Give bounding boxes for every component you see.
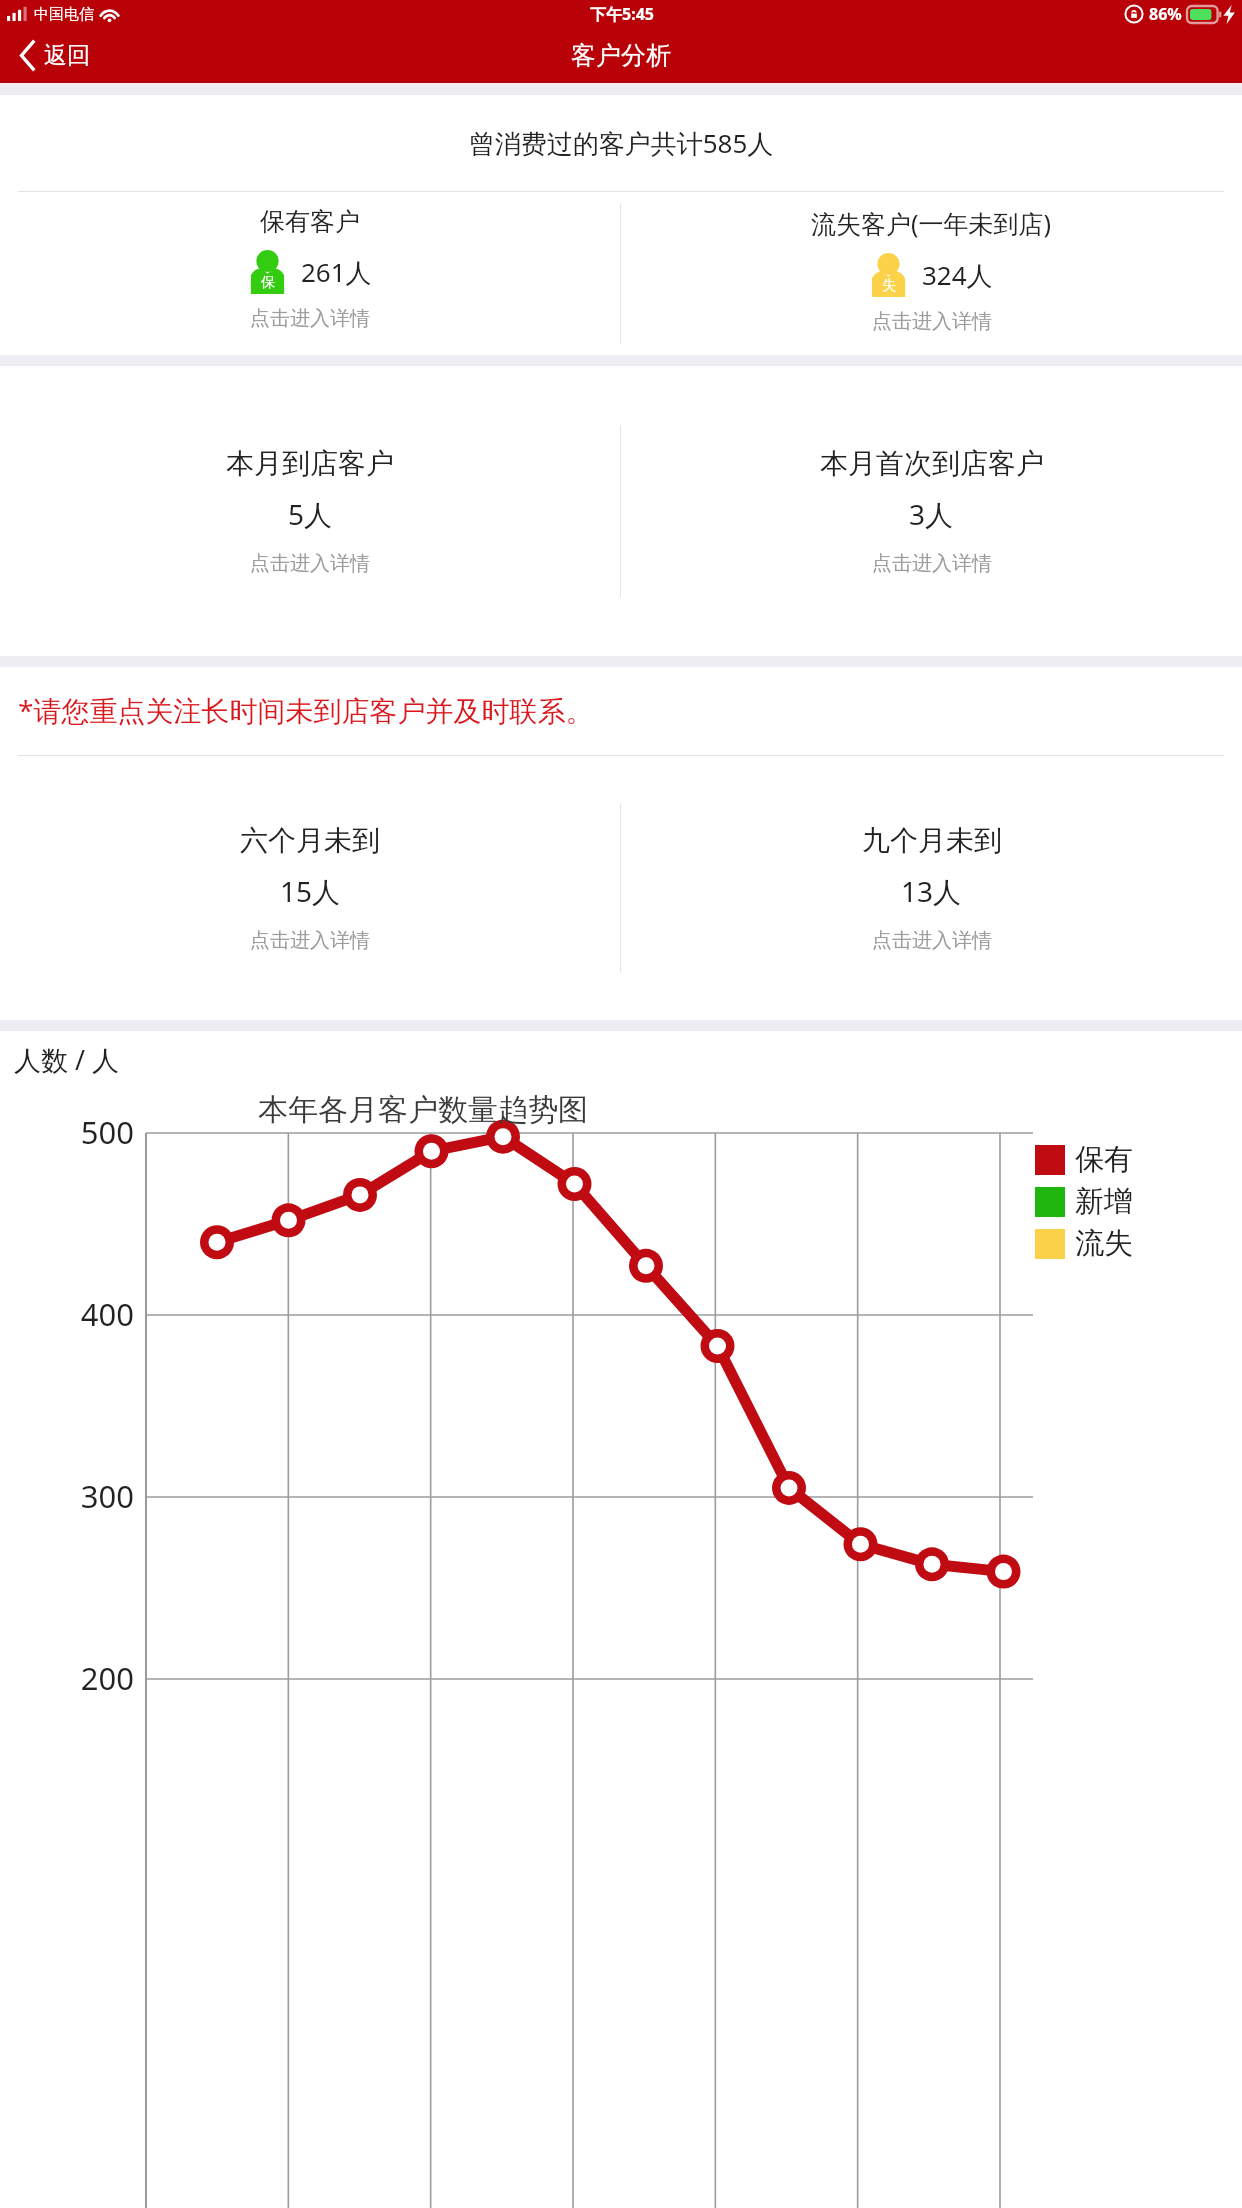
staticText: 保 [261,274,275,292]
staticText: 500 [10,1111,134,1153]
staticText: 点击进入详情 [872,551,992,576]
staticText: 曾消费过的客户共计585人 [0,125,1242,161]
other: Signal [7,7,29,21]
staticText: 点击进入详情 [250,306,370,331]
staticText: 失 [882,277,896,295]
staticText: 5人 [288,495,333,533]
staticText: 人数 / 人 [14,1041,120,1078]
staticText: 流失 [1075,1225,1133,1262]
staticText: 下午5:45 [590,3,654,25]
staticText: 本月首次到店客户 [820,446,1044,481]
staticText: 86% [1149,3,1182,25]
button[interactable]: 保有客户 [0,192,620,355]
button[interactable]: 九个月未到 [621,756,1242,1020]
staticText: 中国电信 [34,5,94,24]
staticText: 点击进入详情 [250,928,370,953]
staticText: *请您重点关注长时间未到店客户并及时联系。 [18,691,594,729]
staticText: 本月到店客户 [226,446,394,481]
staticText: 本年各月客户数量趋势图 [258,1091,588,1129]
staticText: 点击进入详情 [250,551,370,576]
staticText: 324人 [922,257,993,293]
button[interactable]: 流失客户(一年未到店) [621,192,1242,355]
staticText: 九个月未到 [862,823,1002,858]
staticText: 流失客户(一年未到店) [811,206,1052,240]
staticText: 点击进入详情 [872,928,992,953]
staticText: 200 [10,1657,134,1699]
staticText: 15人 [280,872,341,910]
staticText: 客户分析 [571,40,671,71]
other: Wi-Fi [99,7,120,22]
button[interactable]: 本月到店客户 [0,366,620,656]
other: Charging [1223,5,1235,24]
staticText: 六个月未到 [240,823,380,858]
staticText: 点击进入详情 [872,309,992,334]
staticText: 13人 [901,872,962,910]
button[interactable]: 六个月未到 [0,756,620,1020]
other: Battery 86 percent [1187,6,1221,23]
button[interactable]: 本月首次到店客户 [621,366,1242,656]
button[interactable]: 返回 [12,35,98,76]
staticText: 新增 [1075,1183,1133,1220]
staticText: 保有 [1075,1141,1133,1178]
staticText: 400 [10,1293,134,1335]
staticText: 261人 [301,254,372,290]
staticText: 返回 [44,41,90,70]
other: Rotation lock [1124,4,1144,24]
staticText: 保有客户 [260,206,360,237]
staticText: 300 [10,1475,134,1517]
staticText: 3人 [909,495,954,533]
